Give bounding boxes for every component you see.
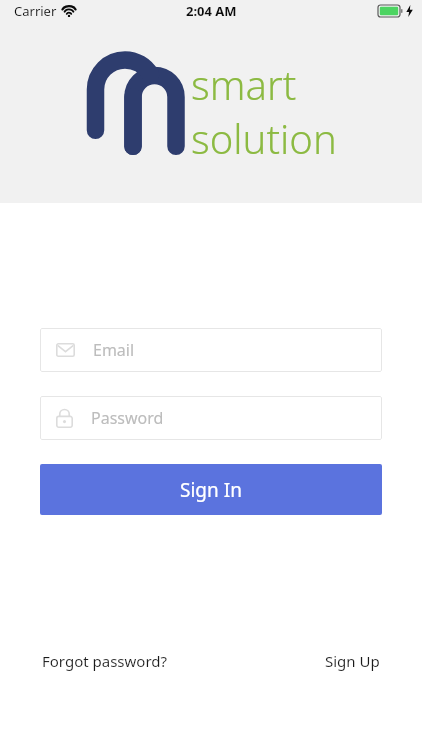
button[interactable]: Sign Up — [323, 645, 382, 677]
staticText: Email — [93, 339, 135, 361]
staticText: Sign Up — [325, 651, 380, 671]
button[interactable]: Email — [40, 328, 382, 372]
staticText: Sign In — [180, 477, 242, 503]
button[interactable]: Sign In — [40, 464, 382, 515]
staticText: 2:04 AM — [186, 2, 237, 20]
staticText: solution — [191, 111, 337, 165]
staticText: Carrier — [14, 2, 57, 20]
button[interactable]: Forgot password? — [40, 645, 170, 677]
staticText: Forgot password? — [42, 651, 168, 671]
staticText: smart — [191, 57, 297, 111]
staticText: Password — [91, 407, 164, 429]
button[interactable]: Password — [40, 396, 382, 440]
